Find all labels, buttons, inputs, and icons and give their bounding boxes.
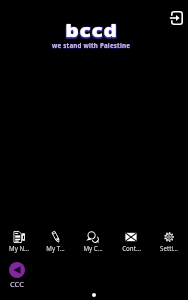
button[interactable]: Setti… — [150, 230, 188, 252]
staticText: My N… — [9, 244, 29, 252]
button[interactable]: My C… — [74, 230, 112, 252]
staticText: bccd — [65, 17, 118, 42]
staticText: bccd — [64, 20, 117, 45]
staticText: bccd — [64, 19, 117, 44]
button[interactable]: Login — [167, 9, 185, 27]
staticText: bccd — [66, 20, 119, 45]
staticText: bccd — [65, 18, 118, 43]
staticText: bccd — [66, 19, 119, 44]
staticText: we stand with Palestine — [52, 42, 131, 50]
button[interactable]: My N… — [0, 230, 37, 252]
button[interactable]: My T… — [37, 230, 74, 252]
staticText: My C… — [83, 244, 103, 252]
staticText: we stand with Palestine — [52, 41, 131, 49]
staticText: Setti… — [160, 244, 178, 252]
button[interactable]: CCC — [3, 262, 31, 289]
staticText: My T… — [46, 244, 65, 252]
button[interactable]: Cont… — [112, 230, 150, 252]
staticText: CCC — [10, 279, 24, 289]
staticText: bccd — [65, 19, 118, 44]
staticText: Cont… — [122, 244, 141, 252]
staticText: bccd — [65, 20, 118, 45]
